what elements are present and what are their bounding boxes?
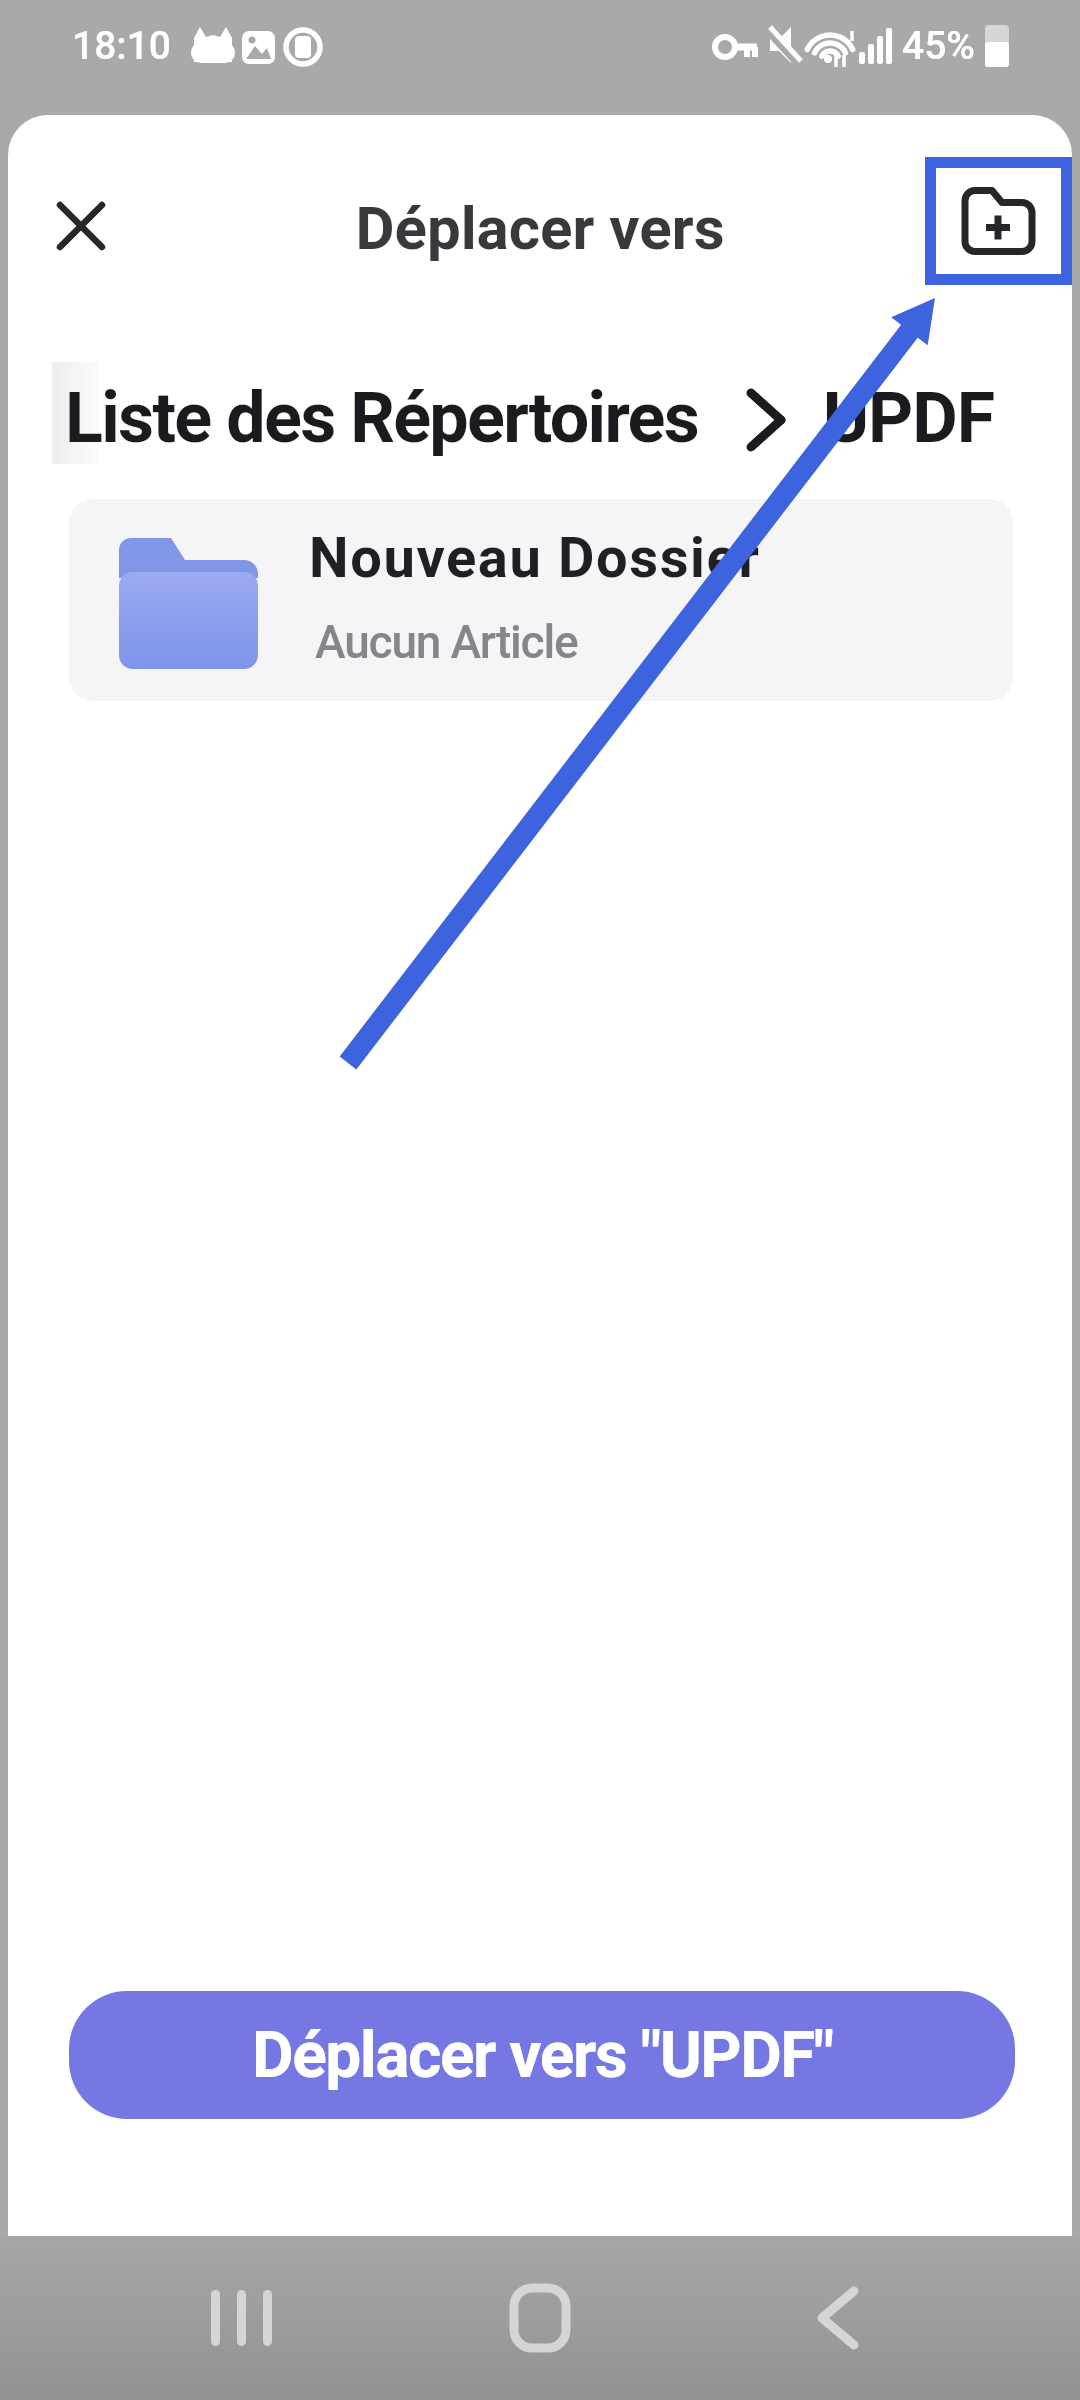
button[interactable] [37,182,125,270]
button[interactable] [480,2270,600,2370]
staticText: UPDF [823,377,995,459]
staticText: Nouveau Dossier [309,525,761,591]
button[interactable]: Nouveau Dossier [69,499,1013,701]
button[interactable] [925,157,1072,285]
staticText: 18:10 [72,23,172,69]
staticText: Déplacer vers [8,193,1072,263]
staticText: Déplacer vers "UPDF" [252,2018,833,2093]
button[interactable]: Déplacer vers "UPDF" [69,1991,1015,2119]
button[interactable] [180,2270,300,2370]
button[interactable] [780,2270,900,2370]
staticText: Aucun Article [315,615,578,669]
staticText: Liste des Répertoires [65,377,699,459]
staticText: 45% [902,23,975,69]
